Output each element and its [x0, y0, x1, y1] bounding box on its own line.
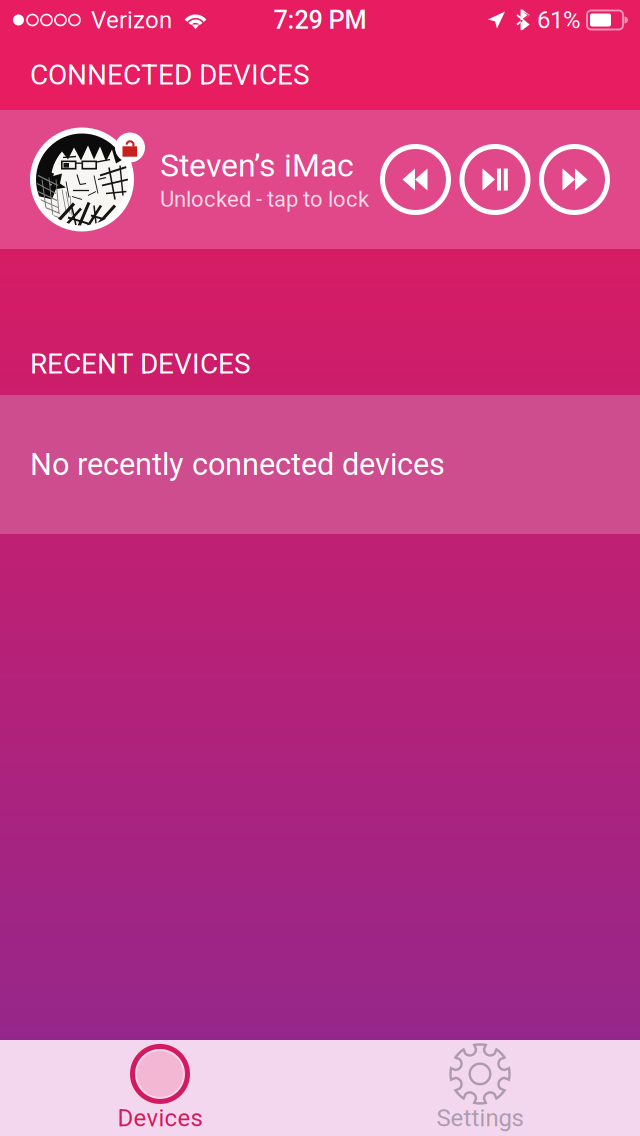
button[interactable]: Devices	[0, 1040, 320, 1136]
staticText: CONNECTED DEVICES	[30, 59, 310, 91]
button[interactable]: Steven’s iMac	[0, 110, 640, 249]
staticText: No recently connected devices	[30, 446, 445, 482]
staticText: RECENT DEVICES	[30, 348, 251, 380]
staticText: Verizon	[91, 6, 172, 34]
staticText: 7:29 PM	[273, 5, 366, 35]
staticText: 61%	[537, 6, 581, 34]
staticText: Steven’s iMac	[160, 147, 354, 184]
button[interactable]: Play or Pause	[459, 144, 530, 215]
button[interactable]: Settings	[320, 1040, 640, 1136]
staticText: Unlocked - tap to lock	[160, 186, 369, 212]
button[interactable]: Rewind	[380, 144, 451, 215]
staticText: Settings	[436, 1104, 523, 1132]
button[interactable]: Fast Forward	[539, 144, 610, 215]
staticText: Devices	[117, 1104, 202, 1132]
